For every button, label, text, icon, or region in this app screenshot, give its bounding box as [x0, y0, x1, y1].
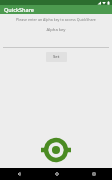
other: QuickShare logo [41, 135, 71, 165]
button[interactable]: Home [38, 168, 75, 180]
button[interactable]: Set [46, 52, 67, 62]
staticText: Set [53, 54, 60, 60]
staticText: Please enter an Alpha key to access Quic… [6, 17, 106, 22]
button[interactable]: Back [0, 168, 38, 180]
button[interactable]: Recents [75, 168, 112, 180]
button[interactable]: Alpha key [0, 26, 112, 34]
staticText: QuickShare [4, 6, 35, 13]
staticText: Alpha key [46, 27, 66, 33]
